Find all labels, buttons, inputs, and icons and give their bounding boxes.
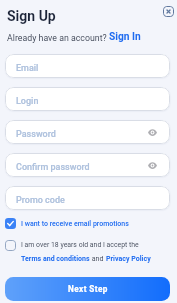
- button[interactable]: Password: [5, 120, 170, 144]
- button[interactable]: I want to receive email promotions: [5, 218, 129, 229]
- staticText: Promo code: [16, 195, 65, 206]
- button[interactable]: Next Step: [5, 277, 170, 301]
- button[interactable]: Confirm password: [5, 153, 170, 177]
- staticText: I want to receive email promotions: [21, 220, 129, 228]
- staticText: Next Step: [68, 284, 108, 294]
- button[interactable]: Close: [163, 6, 174, 17]
- staticText: Sign Up: [7, 8, 56, 24]
- button[interactable]: Sign In: [109, 31, 141, 43]
- staticText: Terms and conditions: [21, 254, 90, 262]
- staticText: Password: [16, 129, 56, 140]
- button[interactable]: Promo code: [5, 186, 170, 210]
- other: Show password: [148, 161, 157, 170]
- button[interactable]: Terms and conditions: [21, 254, 90, 262]
- staticText: Email: [16, 63, 39, 74]
- staticText: and: [90, 254, 106, 262]
- staticText: Already have an account?: [7, 33, 109, 43]
- button[interactable]: Privacy Policy: [106, 254, 151, 262]
- button[interactable]: Email: [5, 54, 170, 78]
- button[interactable]: I am over 18 years old: [5, 240, 16, 251]
- staticText: Confirm password: [16, 162, 90, 173]
- other: Show password: [148, 128, 157, 137]
- staticText: Sign In: [109, 31, 141, 43]
- staticText: Login: [16, 96, 39, 107]
- staticText: Privacy Policy: [106, 254, 151, 262]
- staticText: I am over 18 years old and I accept the: [21, 241, 139, 249]
- button[interactable]: Login: [5, 87, 170, 111]
